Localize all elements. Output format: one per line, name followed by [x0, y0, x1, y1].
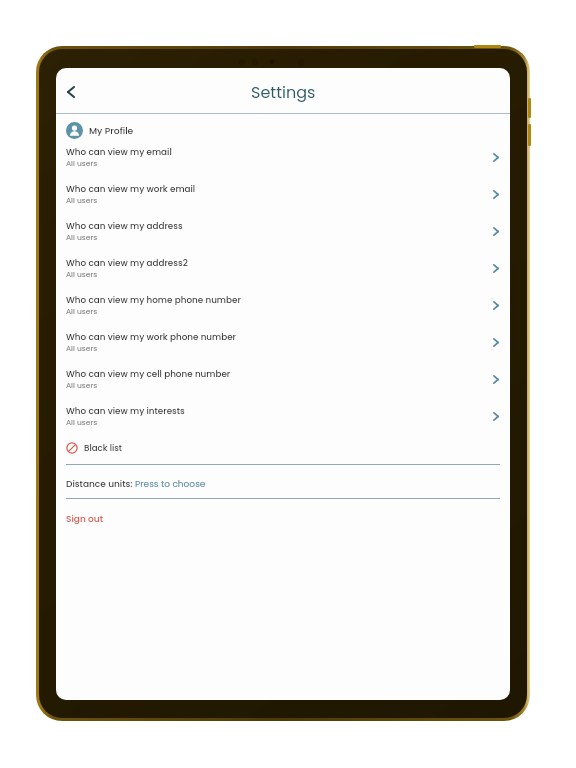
staticText: Who can view my email: [66, 146, 172, 158]
staticText: Black list: [84, 442, 122, 454]
staticText: Sign out: [66, 513, 104, 526]
staticText: My Profile: [89, 124, 134, 137]
button[interactable]: Distance units:: [56, 473, 510, 495]
button[interactable]: Back: [56, 75, 86, 109]
button[interactable]: Black list: [56, 435, 510, 461]
button[interactable]: Who can view my cell phone number: [56, 361, 510, 398]
button[interactable]: My Profile: [56, 114, 510, 139]
staticText: All users: [66, 158, 98, 169]
staticText: Who can view my address: [66, 220, 183, 232]
staticText: All users: [66, 417, 98, 428]
button[interactable]: Who can view my interests: [56, 398, 510, 435]
staticText: Distance units:: [66, 478, 135, 491]
button[interactable]: Who can view my work email: [56, 176, 510, 213]
staticText: Who can view my cell phone number: [66, 368, 231, 380]
staticText: All users: [66, 343, 98, 354]
button[interactable]: Who can view my address2: [56, 250, 510, 287]
staticText: Who can view my work email: [66, 183, 196, 195]
staticText: Who can view my address2: [66, 257, 188, 269]
staticText: All users: [66, 195, 98, 206]
staticText: Press to choose: [135, 478, 206, 491]
staticText: All users: [66, 269, 98, 280]
button[interactable]: Sign out: [66, 513, 104, 526]
button[interactable]: Who can view my work phone number: [56, 324, 510, 361]
button[interactable]: Who can view my email: [56, 139, 510, 176]
staticText: Who can view my work phone number: [66, 331, 236, 343]
staticText: All users: [66, 306, 98, 317]
staticText: Settings: [251, 81, 316, 103]
staticText: Who can view my home phone number: [66, 294, 241, 306]
staticText: All users: [66, 380, 98, 391]
staticText: Who can view my interests: [66, 405, 185, 417]
staticText: All users: [66, 232, 98, 243]
button[interactable]: Who can view my home phone number: [56, 287, 510, 324]
button[interactable]: Who can view my address: [56, 213, 510, 250]
